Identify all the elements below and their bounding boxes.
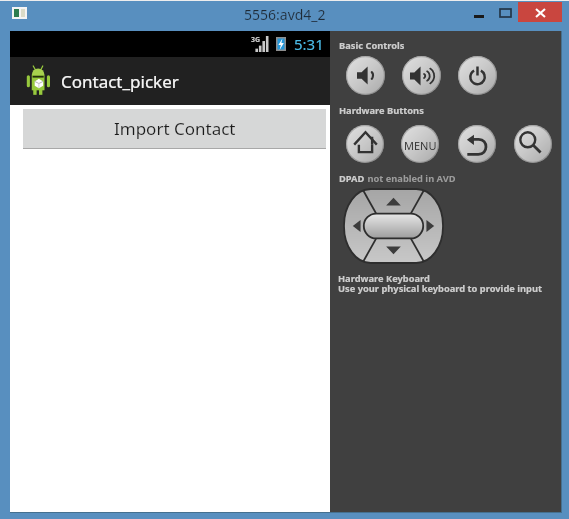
staticText: 3G bbox=[251, 35, 261, 45]
button[interactable]: Power bbox=[458, 56, 497, 95]
button[interactable]: Back bbox=[458, 125, 496, 163]
button[interactable]: Minimize bbox=[465, 2, 492, 22]
button[interactable]: Import Contact bbox=[23, 109, 326, 148]
button[interactable]: Volume down bbox=[346, 56, 385, 95]
staticText: not enabled in AVD bbox=[365, 172, 456, 185]
staticText: 5556:avd4_2 bbox=[244, 5, 326, 24]
staticText: DPAD bbox=[339, 172, 365, 185]
staticText: Import Contact bbox=[114, 117, 236, 140]
staticText: Hardware Keyboard bbox=[338, 272, 430, 285]
button[interactable]: Maximize bbox=[492, 2, 519, 22]
staticText: 5:31 bbox=[294, 34, 324, 54]
staticText: Contact_picker bbox=[61, 70, 179, 93]
button[interactable]: Volume up bbox=[402, 56, 441, 95]
staticText: Basic Controls bbox=[339, 39, 405, 52]
button[interactable]: Home bbox=[346, 125, 384, 163]
button[interactable]: D-pad bbox=[344, 189, 443, 263]
staticText: Hardware Buttons bbox=[339, 104, 424, 117]
staticText: Use your physical keyboard to provide in… bbox=[338, 282, 543, 295]
button[interactable]: Close bbox=[518, 2, 562, 22]
staticText: MENU bbox=[404, 138, 437, 150]
button[interactable]: Menu bbox=[401, 125, 439, 163]
button[interactable]: Search bbox=[514, 125, 552, 163]
